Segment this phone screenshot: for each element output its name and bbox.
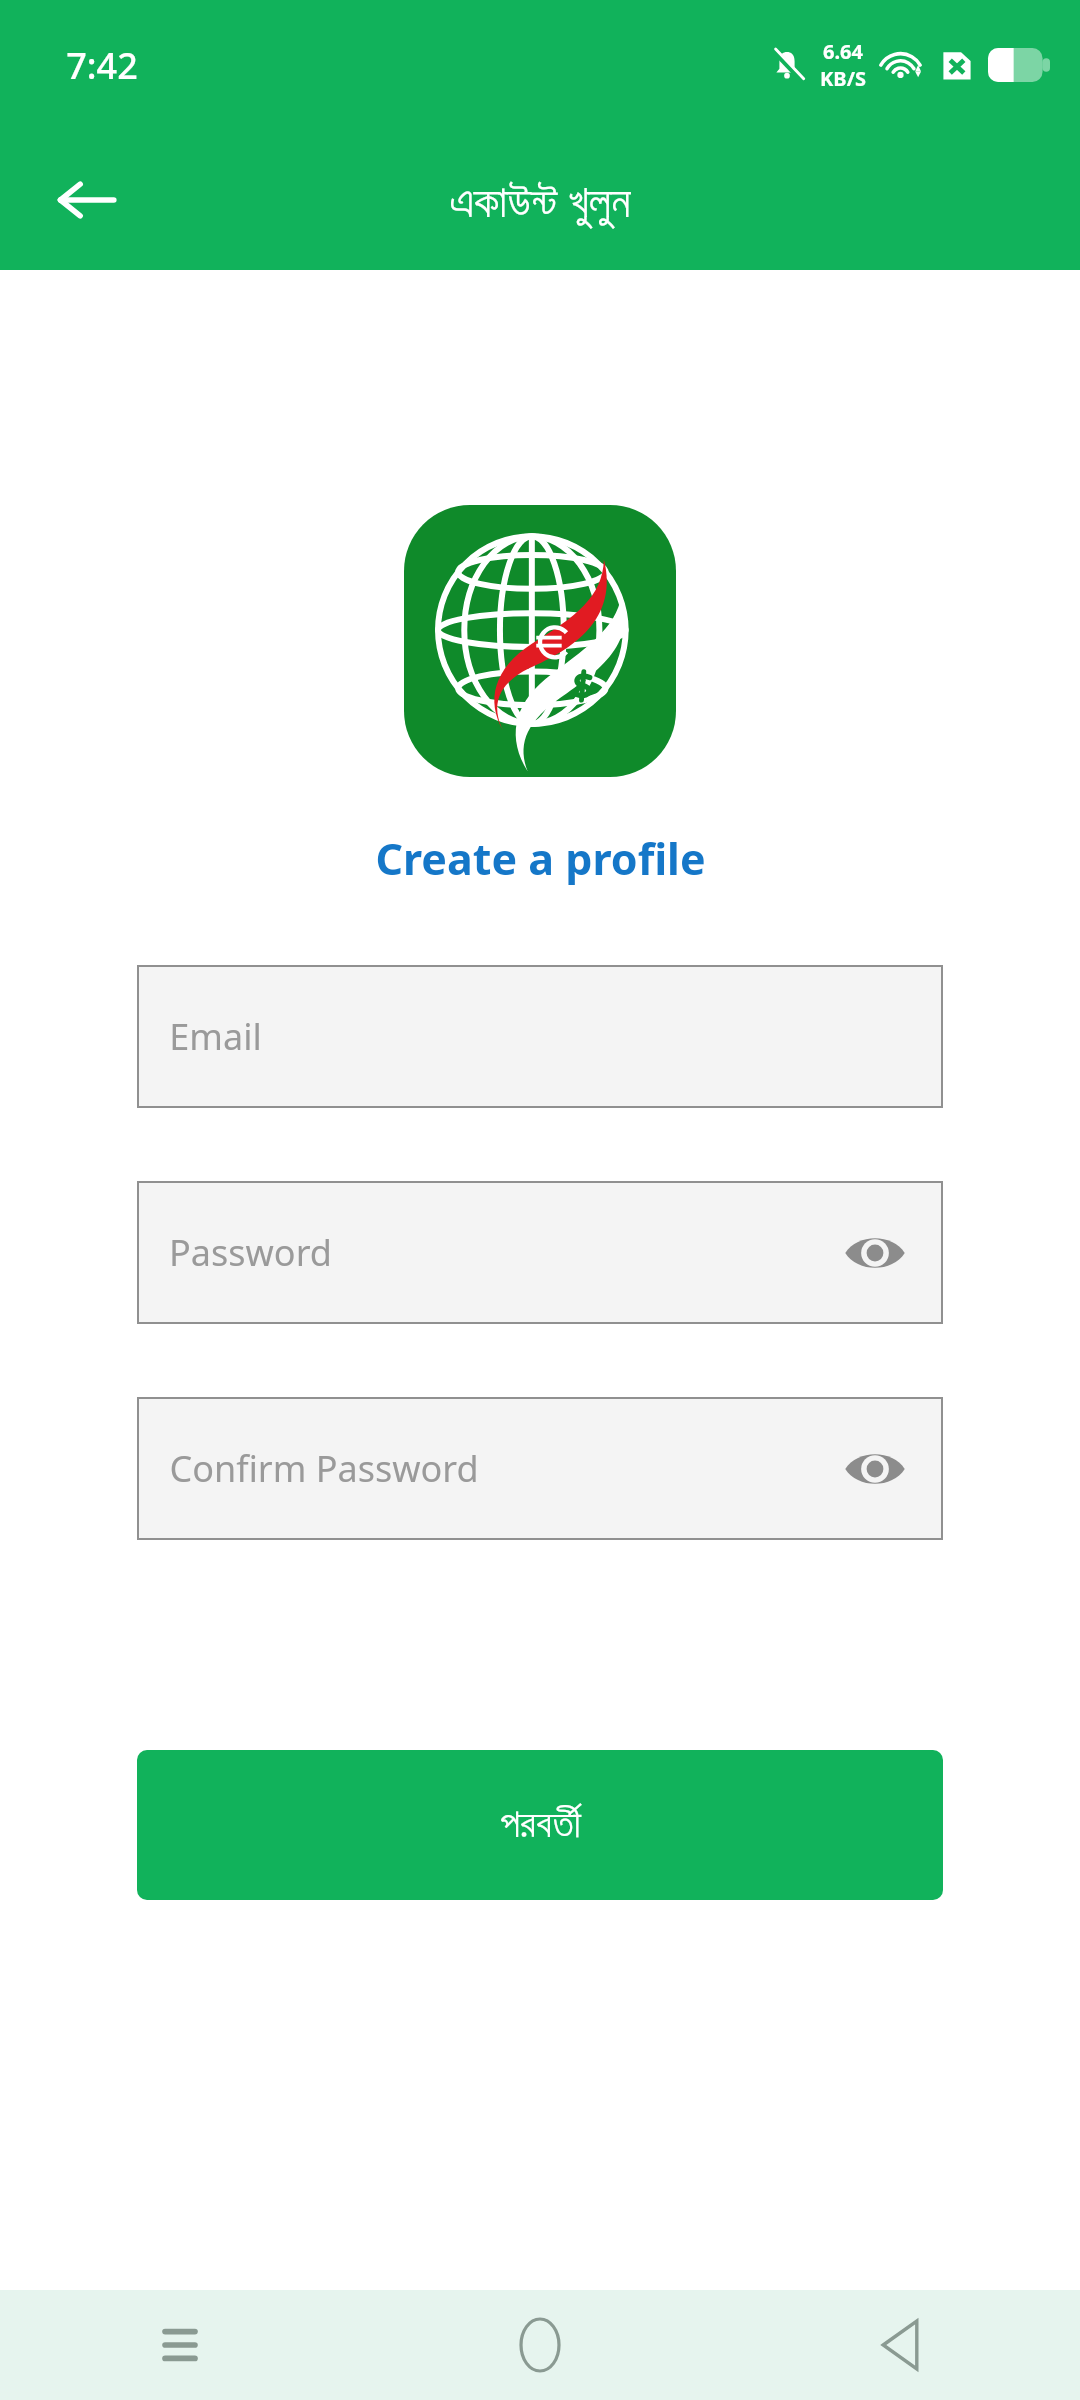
staticText: 7:42 [66,41,138,90]
button[interactable]: Back [720,2290,1080,2400]
staticText: Create a profile [375,829,706,888]
button[interactable]: Show password [837,1431,913,1507]
button[interactable]: Home [360,2290,720,2400]
button[interactable]: Show password [837,1215,913,1291]
button[interactable]: Recent apps [0,2290,360,2400]
button[interactable]: Confirm Password [137,1397,943,1540]
staticText: একাউন্ট খুলুন [449,170,631,230]
staticText: Email [169,1012,262,1061]
button[interactable]: Password [137,1181,943,1324]
staticText: KB/S [820,65,866,92]
staticText: 6.64 [823,38,863,65]
button[interactable]: Email [137,965,943,1108]
staticText: Password [169,1228,332,1277]
staticText: Confirm Password [169,1444,479,1493]
button[interactable]: পরবর্তী [137,1750,943,1900]
button[interactable]: Back [46,160,126,240]
staticText: পরবর্তী [500,1805,581,1845]
